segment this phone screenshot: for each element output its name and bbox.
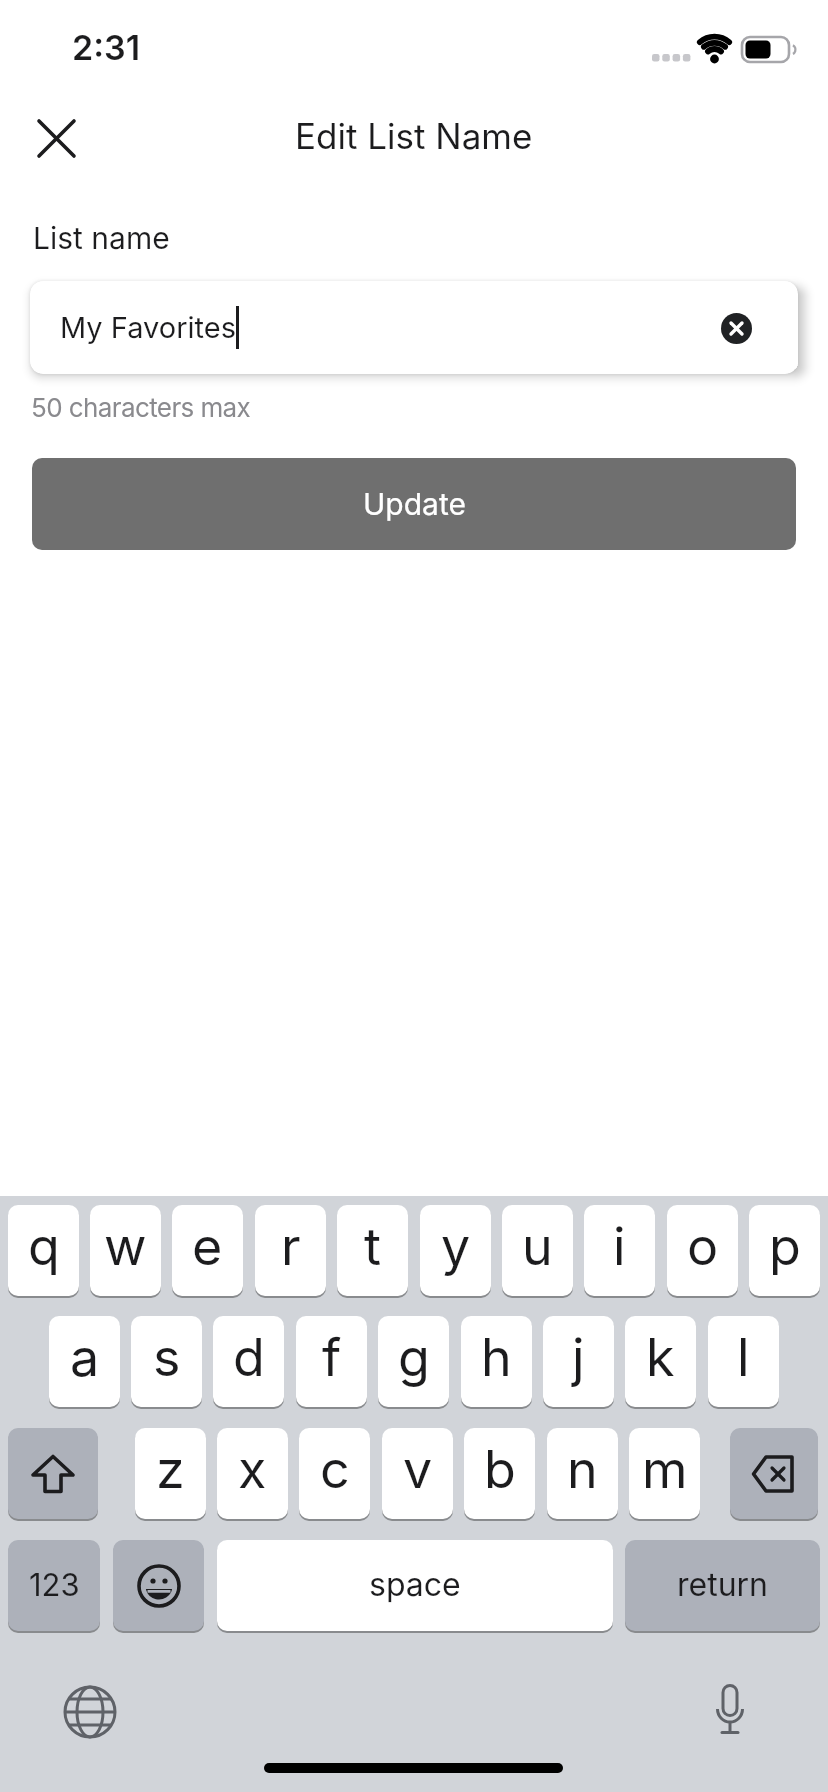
staticText: z [156, 1438, 185, 1501]
button[interactable]: i [584, 1205, 655, 1296]
button[interactable]: u [502, 1205, 573, 1296]
button[interactable]: j [543, 1316, 614, 1407]
staticText: k [646, 1326, 675, 1389]
button[interactable]: space [217, 1540, 613, 1631]
button[interactable]: v [382, 1428, 453, 1519]
staticText: r [281, 1215, 301, 1278]
staticText: f [322, 1326, 342, 1389]
button[interactable] [113, 1540, 204, 1631]
staticText: q [28, 1215, 60, 1278]
staticText: y [441, 1215, 471, 1278]
button[interactable]: Update [32, 458, 796, 550]
staticText: a [70, 1326, 100, 1389]
button[interactable] [721, 313, 752, 344]
staticText: My Favorites [60, 310, 236, 345]
button[interactable]: y [420, 1205, 491, 1296]
staticText: l [737, 1326, 750, 1389]
staticText: v [403, 1438, 433, 1501]
button[interactable]: p [749, 1205, 820, 1296]
staticText: i [613, 1215, 626, 1278]
staticText: c [320, 1438, 350, 1501]
staticText: 50 characters max [31, 392, 251, 423]
staticText: x [238, 1438, 267, 1501]
staticText: o [687, 1215, 719, 1278]
button[interactable]: b [464, 1428, 535, 1519]
button[interactable]: a [49, 1316, 120, 1407]
button[interactable]: h [461, 1316, 532, 1407]
button[interactable]: 123 [8, 1540, 100, 1631]
staticText: b [484, 1438, 516, 1501]
button[interactable]: g [378, 1316, 449, 1407]
staticText: Edit List Name [295, 115, 533, 157]
button[interactable]: t [337, 1205, 408, 1296]
button[interactable]: d [213, 1316, 284, 1407]
button[interactable] [28, 110, 86, 168]
staticText: Update [363, 486, 466, 522]
button[interactable]: x [217, 1428, 288, 1519]
button[interactable] [63, 1685, 117, 1739]
button[interactable]: My Favorites [30, 281, 798, 374]
staticText: j [572, 1326, 585, 1389]
button[interactable]: s [131, 1316, 202, 1407]
button[interactable]: n [547, 1428, 618, 1519]
staticText: space [369, 1565, 461, 1604]
button[interactable]: return [625, 1540, 820, 1631]
button[interactable]: l [708, 1316, 779, 1407]
button[interactable]: o [667, 1205, 738, 1296]
button[interactable]: m [629, 1428, 700, 1519]
button[interactable]: r [255, 1205, 326, 1296]
staticText: p [769, 1215, 801, 1278]
button[interactable]: z [135, 1428, 206, 1519]
staticText: return [677, 1565, 769, 1604]
staticText: s [153, 1326, 181, 1389]
button[interactable]: k [625, 1316, 696, 1407]
staticText: u [522, 1215, 553, 1278]
staticText: g [398, 1326, 430, 1389]
staticText: n [567, 1438, 598, 1501]
staticText: d [233, 1326, 265, 1389]
button[interactable] [8, 1428, 98, 1519]
staticText: t [364, 1215, 382, 1278]
button[interactable]: e [172, 1205, 243, 1296]
button[interactable]: f [296, 1316, 367, 1407]
button[interactable] [716, 1684, 744, 1740]
staticText: w [104, 1215, 147, 1278]
staticText: m [642, 1438, 688, 1501]
staticText: h [481, 1326, 512, 1389]
button[interactable]: c [299, 1428, 370, 1519]
staticText: e [192, 1215, 223, 1278]
staticText: List name [33, 220, 170, 256]
staticText: 2:31 [72, 27, 141, 68]
button[interactable]: w [90, 1205, 161, 1296]
button[interactable] [730, 1428, 818, 1519]
button[interactable]: q [8, 1205, 79, 1296]
staticText: 123 [29, 1566, 80, 1604]
